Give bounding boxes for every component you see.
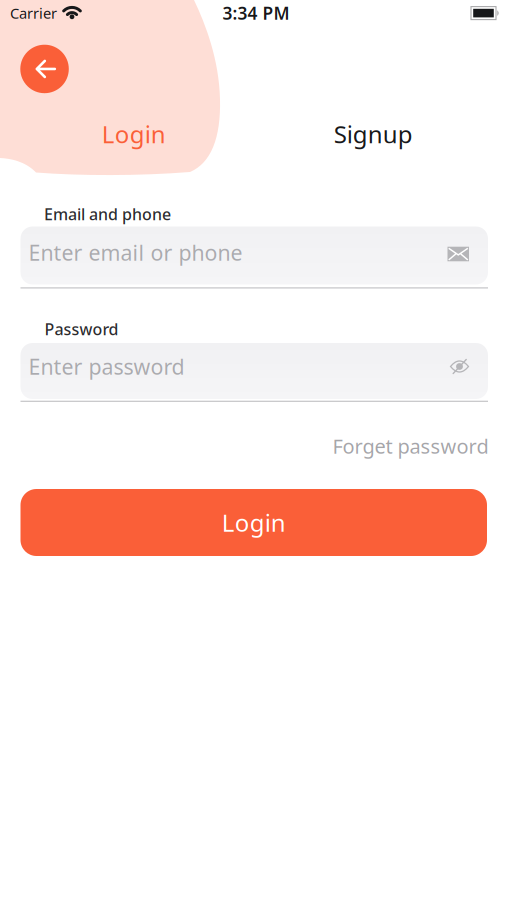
- staticText: Password: [44, 318, 118, 340]
- button[interactable]: Login: [20, 489, 487, 556]
- staticText: Login: [222, 507, 286, 538]
- staticText: Signup: [334, 118, 413, 150]
- staticText: 3:34 PM: [222, 1, 289, 24]
- staticText: Carrier: [10, 3, 57, 23]
- staticText: Enter password: [28, 352, 184, 381]
- button[interactable]: Back: [20, 45, 69, 93]
- staticText: Email and phone: [44, 203, 171, 225]
- button[interactable]: Enter password: [20, 343, 488, 399]
- button[interactable]: Forget password: [332, 433, 488, 459]
- staticText: Login: [102, 118, 166, 150]
- button[interactable]: Enter email or phone: [20, 226, 488, 284]
- button[interactable]: Show password: [450, 360, 469, 373]
- button[interactable]: Login: [14, 112, 253, 156]
- button[interactable]: Signup: [253, 112, 493, 156]
- staticText: Enter email or phone: [28, 238, 242, 267]
- staticText: Forget password: [332, 433, 488, 459]
